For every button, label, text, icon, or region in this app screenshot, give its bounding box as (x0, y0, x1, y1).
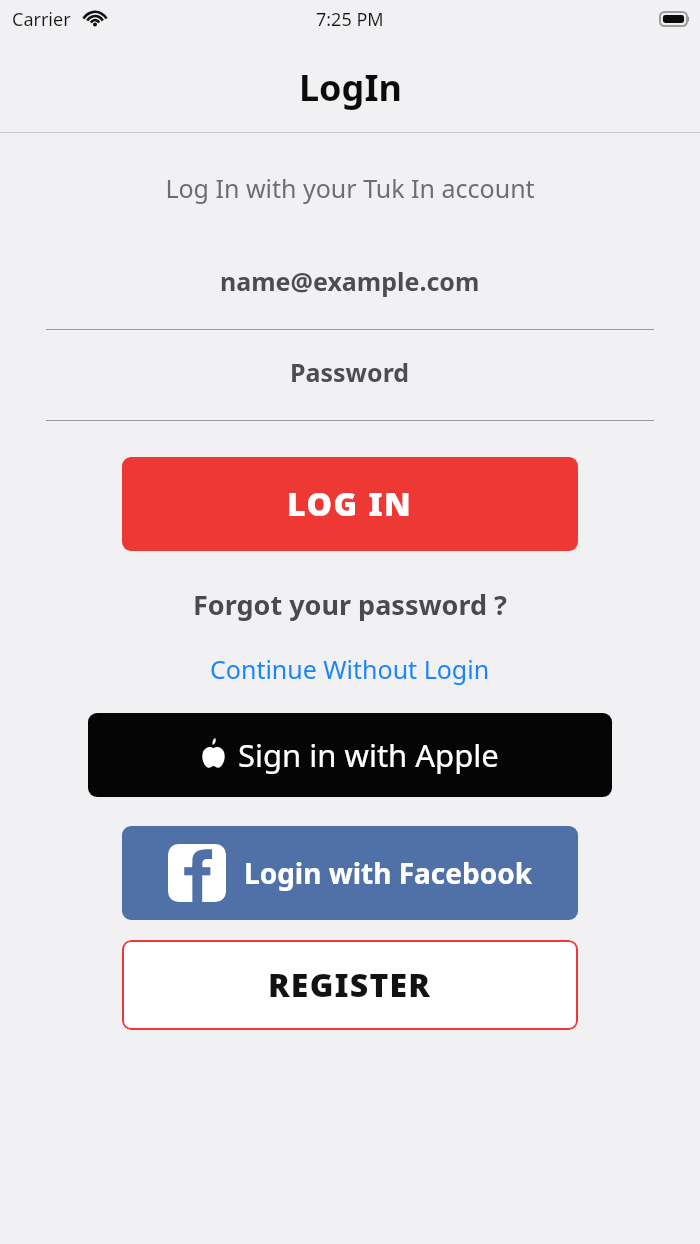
button[interactable]: Continue Without Login (196, 647, 504, 691)
other: Sign in with Apple (201, 738, 226, 768)
button[interactable]: Sign in with Apple (88, 713, 612, 797)
staticText: name@example.com (220, 264, 480, 298)
button[interactable]: REGISTER (122, 940, 578, 1030)
staticText: LogIn (299, 63, 402, 112)
staticText: 7:25 PM (316, 7, 384, 32)
staticText: Password (290, 355, 410, 389)
staticText: LOG IN (287, 482, 413, 526)
button[interactable]: LOG IN (122, 457, 578, 551)
staticText: Continue Without Login (210, 652, 490, 686)
staticText: Login with Facebook (244, 854, 533, 892)
staticText: Log In with your Tuk In account (0, 171, 700, 205)
other: Login with Facebook (168, 844, 226, 902)
button[interactable]: name@example.com (46, 255, 654, 330)
staticText: Sign in with Apple (238, 734, 499, 776)
staticText: Forgot your password ? (193, 586, 507, 623)
staticText: Carrier (12, 7, 71, 32)
button[interactable]: Password (46, 346, 654, 421)
button[interactable]: Login with Facebook (122, 826, 578, 920)
button[interactable]: Forgot your password ? (179, 581, 521, 628)
staticText: REGISTER (268, 963, 432, 1007)
